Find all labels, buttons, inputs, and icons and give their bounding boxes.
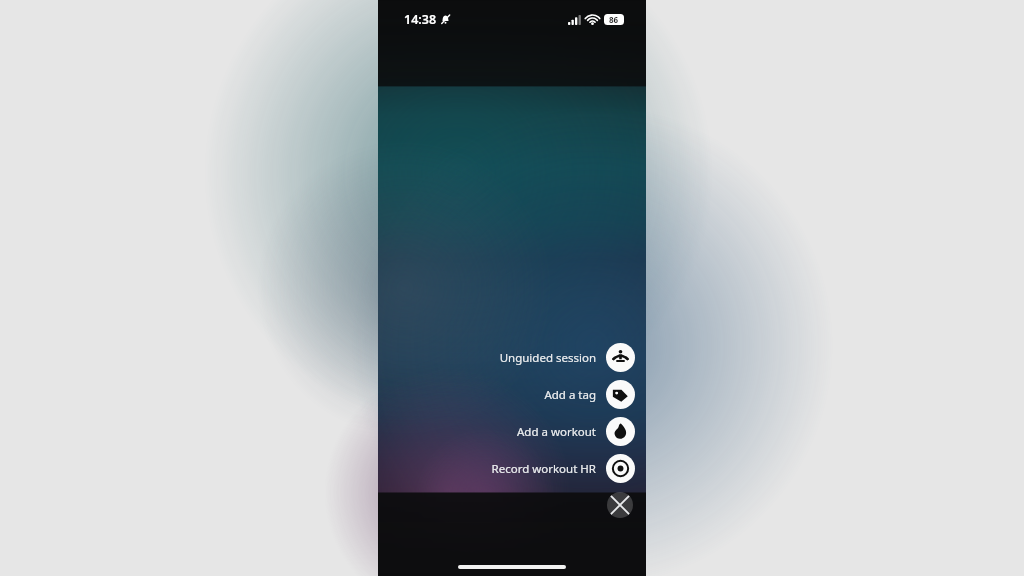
staticText: 86 <box>609 14 619 25</box>
button[interactable]: Add a workout <box>378 413 646 450</box>
button[interactable]: Close menu <box>607 492 633 518</box>
staticText: Record workout HR <box>491 461 596 477</box>
staticText: Unguided session <box>499 350 596 366</box>
button[interactable]: Add a tag <box>378 376 646 413</box>
staticText: Add a workout <box>516 424 596 440</box>
button[interactable]: Record workout HR <box>378 450 646 487</box>
staticText: 14:38 <box>404 11 437 28</box>
button[interactable]: Unguided session <box>378 339 646 376</box>
staticText: Add a tag <box>544 387 596 403</box>
